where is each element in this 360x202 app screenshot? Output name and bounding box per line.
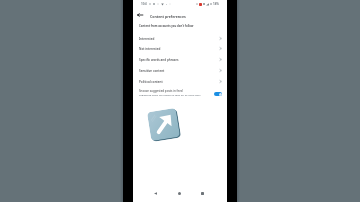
staticText: Political content [139,80,163,84]
button[interactable]: Back [150,188,160,198]
button[interactable]: Interested [133,33,227,44]
staticText: 10:4 [141,2,147,6]
button[interactable]: Home [174,188,184,198]
button[interactable]: Not interested [133,43,227,54]
staticText: Content from accounts you don't follow [139,24,194,28]
staticText: Suggested posts are hidden in feed for 3… [139,93,202,96]
staticText: Specific words and phrases [139,58,179,62]
button[interactable]: Back [135,10,145,20]
staticText: Not interested [139,47,161,51]
staticText: Snooze suggested posts in feed [139,89,183,93]
button[interactable]: Specific words and phrases [133,54,227,65]
button[interactable]: Snooze suggested posts in feed [133,86,227,98]
button[interactable]: Sensitive content [133,65,227,76]
staticText: Interested [139,37,155,41]
button[interactable]: Political content [133,76,227,87]
button[interactable]: Recent apps [197,188,207,198]
button[interactable]: Snooze suggested posts toggle [214,92,222,96]
staticText: 14% [213,2,219,6]
staticText: Content preferences [150,14,186,19]
staticText: Sensitive content [139,69,165,73]
